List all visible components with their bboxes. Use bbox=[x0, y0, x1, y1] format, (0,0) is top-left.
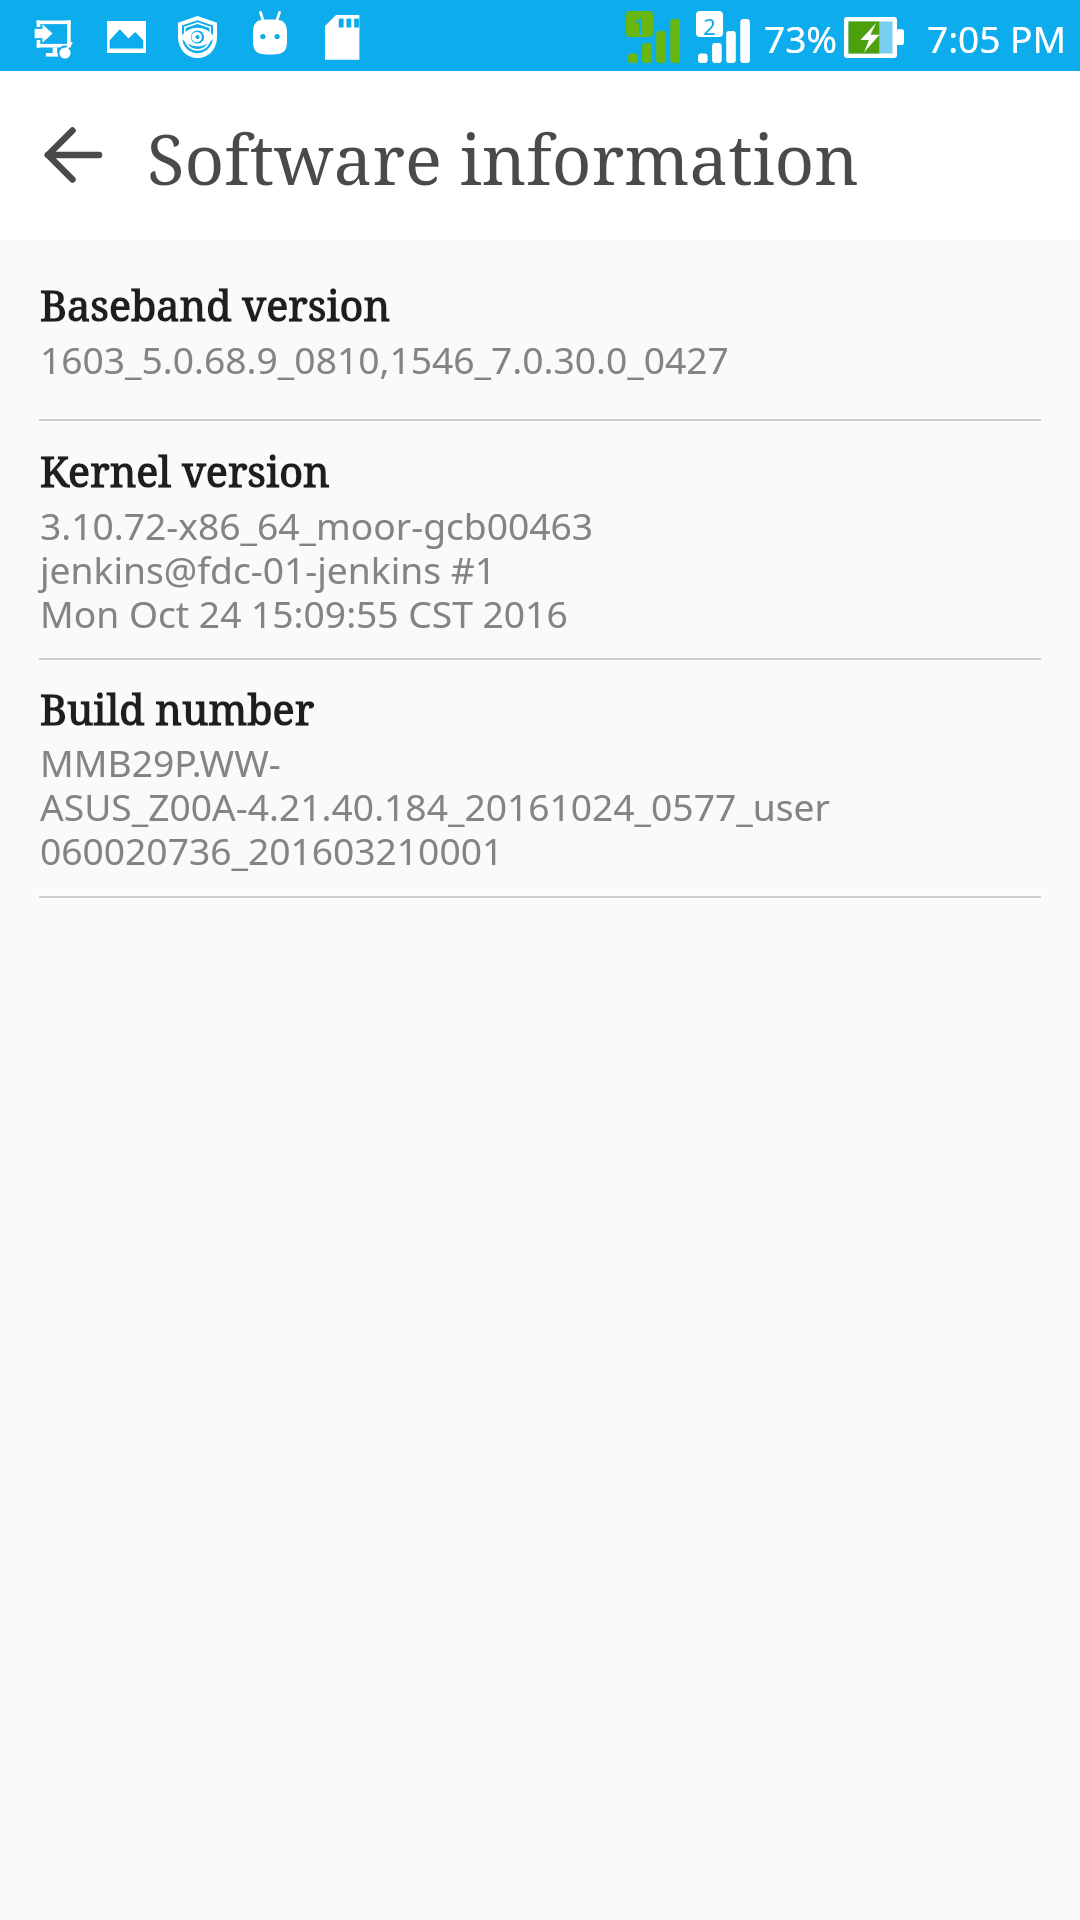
staticText: Software information bbox=[147, 111, 859, 205]
button[interactable]: Navigate up bbox=[22, 105, 122, 205]
staticText: jenkins@fdc-01-jenkins #1 bbox=[40, 544, 496, 595]
staticText: 1603_5.0.68.9_0810,1546_7.0.30.0_0427 bbox=[40, 334, 729, 385]
staticText: Mon Oct 24 15:09:55 CST 2016 bbox=[40, 588, 568, 639]
staticText: 1 bbox=[626, 11, 653, 41]
staticText: 060020736_201603210001 bbox=[40, 825, 504, 876]
staticText: Build number bbox=[40, 681, 315, 737]
staticText: MMB29P.WW- bbox=[40, 737, 281, 788]
staticText: 7:05 PM bbox=[927, 13, 1066, 63]
staticText: 2 bbox=[696, 11, 723, 41]
staticText: 3.10.72-x86_64_moor-gcb00463 bbox=[40, 500, 594, 551]
staticText: ASUS_Z00A-4.21.40.184_20161024_0577_user bbox=[40, 781, 830, 832]
staticText: Baseband version bbox=[40, 277, 391, 333]
staticText: 73% bbox=[764, 13, 838, 63]
staticText: Kernel version bbox=[40, 443, 330, 499]
